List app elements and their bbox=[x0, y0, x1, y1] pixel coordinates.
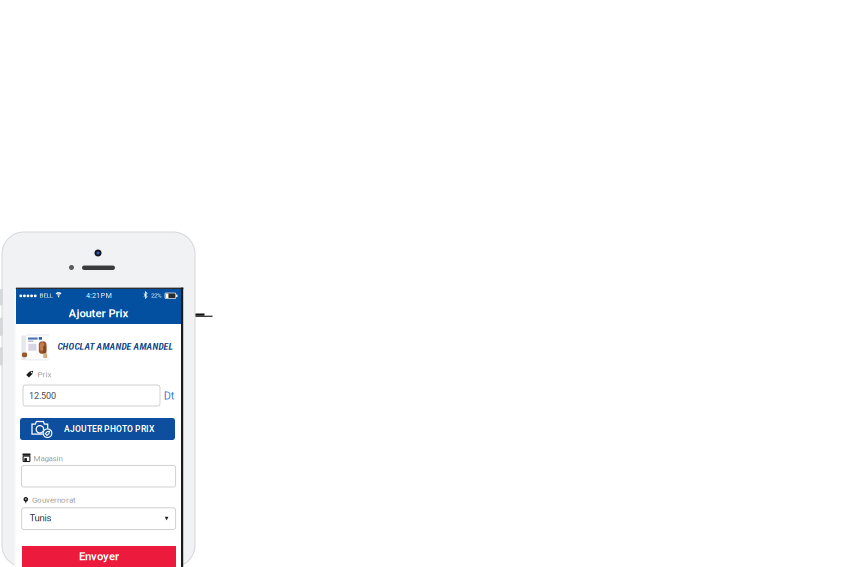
staticText: PM bbox=[101, 291, 112, 300]
button[interactable]: AJOUTER PHOTO PRIX bbox=[0, 0, 868, 567]
staticText: Ajouter Prix bbox=[68, 307, 128, 320]
staticText: BELL bbox=[39, 292, 52, 299]
staticText: 22% bbox=[151, 292, 161, 299]
staticText: Gouvernorat bbox=[32, 495, 76, 505]
button[interactable]: Tunis bbox=[0, 0, 868, 567]
staticText: Envoyer bbox=[79, 550, 119, 563]
staticText: Magasin bbox=[33, 454, 62, 463]
staticText: Tunis bbox=[29, 512, 51, 524]
staticText: 12.500 bbox=[29, 391, 56, 401]
staticText: CHOCLAT AMANDE AMANDEL bbox=[57, 341, 172, 352]
staticText: 4:21 bbox=[86, 291, 100, 300]
staticText: AJOUTER PHOTO PRIX bbox=[64, 424, 154, 434]
staticText: Prix bbox=[37, 370, 51, 379]
staticText: Dt bbox=[164, 389, 175, 402]
button[interactable]: Envoyer bbox=[0, 0, 868, 567]
